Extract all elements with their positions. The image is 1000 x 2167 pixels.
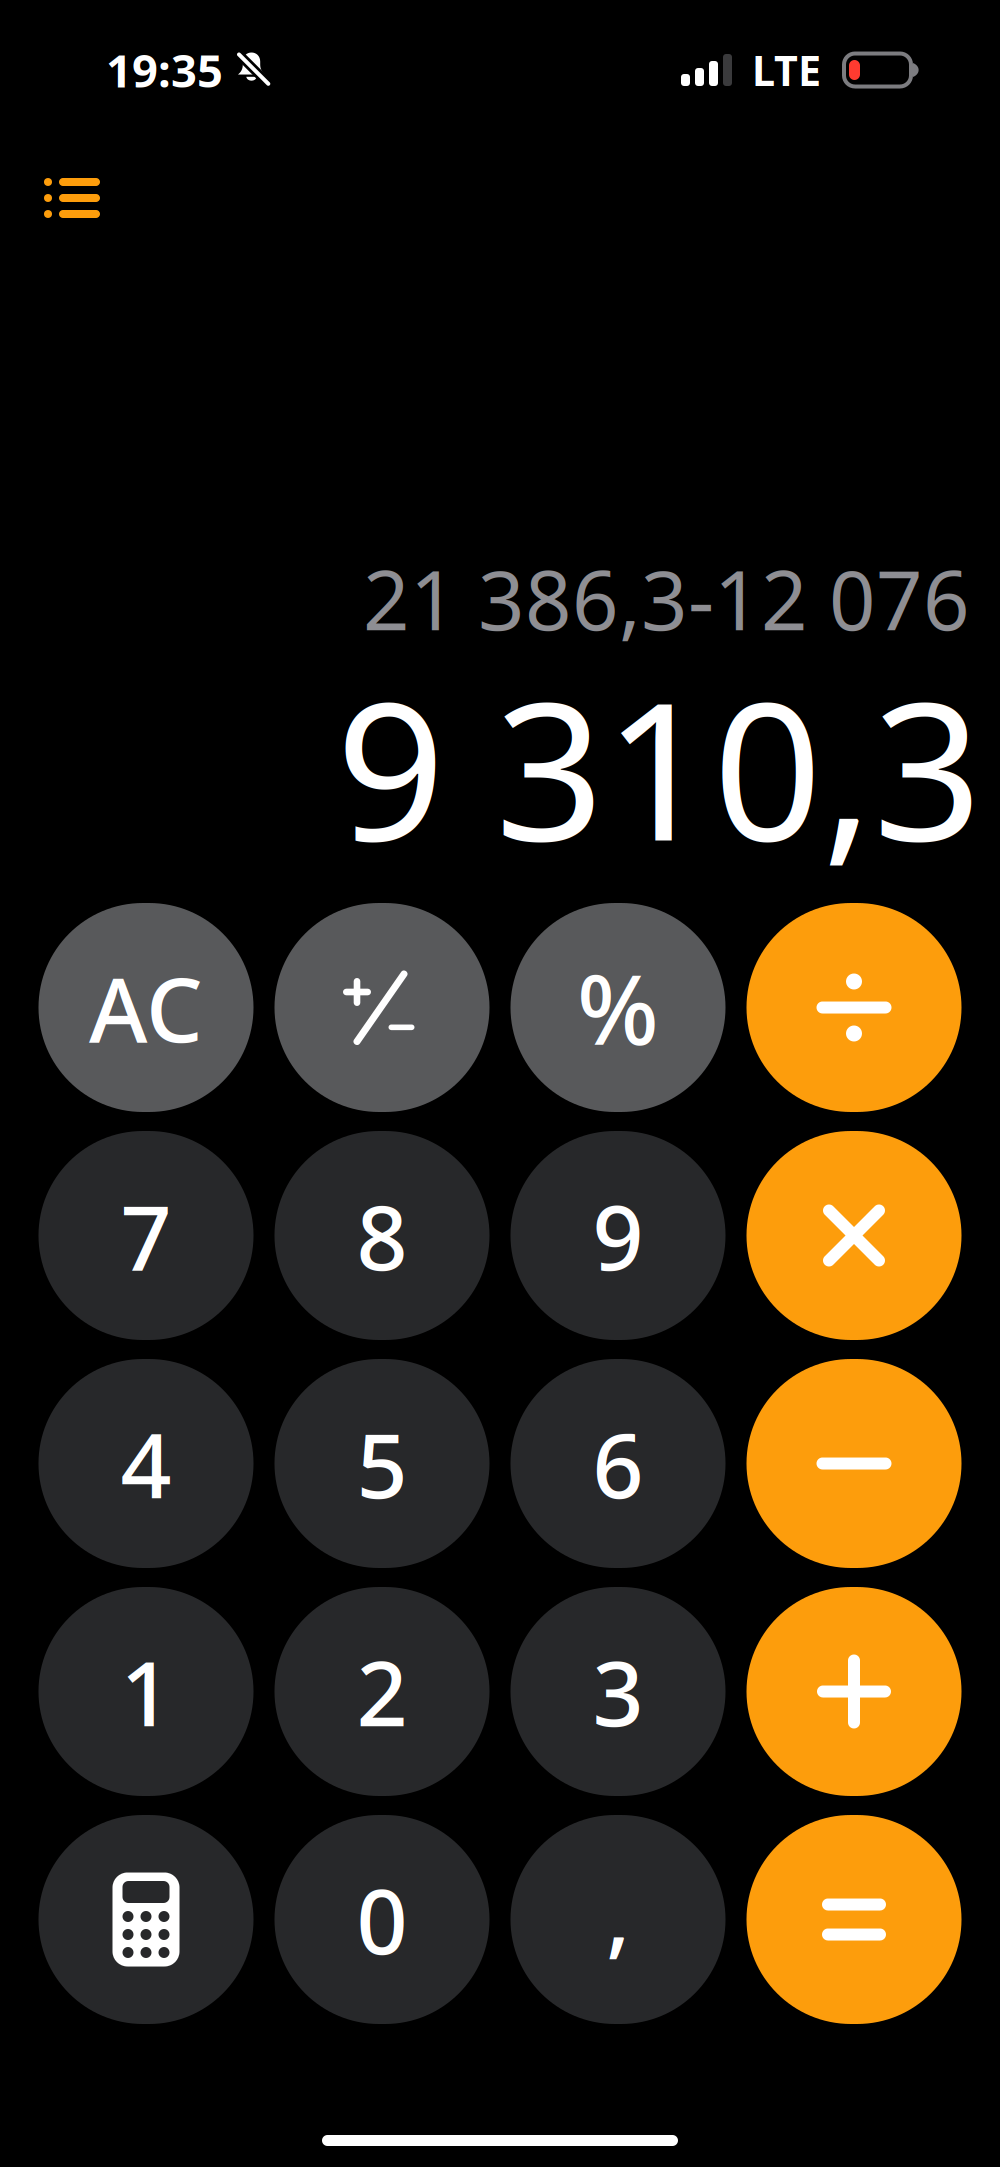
staticText: 5 (356, 1404, 407, 1523)
button[interactable]: 4 (38, 1359, 253, 1568)
staticText: , (606, 1853, 630, 1972)
staticText: 0 (356, 1860, 407, 1979)
staticText: 6 (592, 1404, 643, 1523)
button[interactable]: 9 (510, 1131, 725, 1340)
button[interactable]: % (510, 903, 725, 1112)
button[interactable]: 2 (274, 1587, 489, 1796)
staticText: 8 (356, 1176, 407, 1295)
button[interactable]: 7 (38, 1131, 253, 1340)
button[interactable]: 8 (274, 1131, 489, 1340)
button[interactable]: 0 (274, 1815, 489, 2024)
button[interactable]: 5 (274, 1359, 489, 1568)
button[interactable]: 6 (510, 1359, 725, 1568)
staticText: LTE (752, 43, 821, 97)
button[interactable]: Equals (746, 1815, 961, 2024)
staticText: AC (89, 948, 203, 1067)
button[interactable]: 3 (510, 1587, 725, 1796)
staticText: 19:35 (106, 40, 223, 100)
button[interactable]: Minus (746, 1359, 961, 1568)
button[interactable]: AC (38, 903, 253, 1112)
staticText: 9 310,3 (336, 640, 982, 893)
button[interactable]: 1 (38, 1587, 253, 1796)
button[interactable]: Multiply (746, 1131, 961, 1340)
staticText: 1 (120, 1632, 171, 1751)
button[interactable]: Calculator (38, 1815, 253, 2024)
button[interactable]: Plus (746, 1587, 961, 1796)
staticText: 21 386,3-12 076 (363, 545, 970, 653)
button[interactable]: Plus minus (274, 903, 489, 1112)
staticText: 7 (120, 1176, 171, 1295)
staticText: 4 (120, 1404, 171, 1523)
staticText: % (577, 944, 659, 1071)
staticText: 3 (592, 1632, 643, 1751)
staticText: 9 (592, 1176, 643, 1295)
button[interactable]: , (510, 1815, 725, 2024)
staticText: 2 (356, 1632, 407, 1751)
button[interactable]: History (22, 156, 122, 240)
button[interactable]: Divide (746, 903, 961, 1112)
